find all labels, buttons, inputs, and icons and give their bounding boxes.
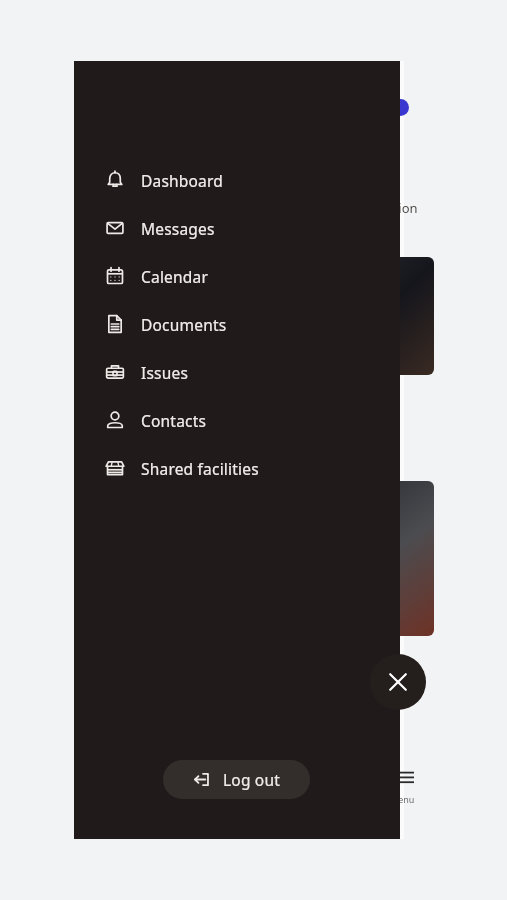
button[interactable]: Calendar (74, 252, 400, 300)
button[interactable]: Messages (74, 204, 400, 252)
button[interactable]: Dashboard (74, 156, 400, 204)
staticText: Log out (223, 769, 281, 790)
button[interactable]: Contacts (74, 396, 400, 444)
button[interactable]: Shared facilities (74, 444, 400, 492)
button[interactable]: Close menu (370, 654, 426, 710)
button[interactable]: Log out (163, 760, 310, 799)
staticText: Menu (390, 793, 415, 805)
staticText: Shared facilities (141, 458, 259, 479)
staticText: Messages (141, 218, 215, 239)
staticText: Issues (141, 362, 189, 383)
staticText: Information (344, 199, 418, 217)
button[interactable]: Issues (74, 348, 400, 396)
button[interactable]: Documents (74, 300, 400, 348)
staticText: Documents (141, 314, 227, 335)
staticText: Dashboard (141, 170, 224, 191)
staticText: Contacts (141, 410, 207, 431)
staticText: Calendar (141, 266, 209, 287)
